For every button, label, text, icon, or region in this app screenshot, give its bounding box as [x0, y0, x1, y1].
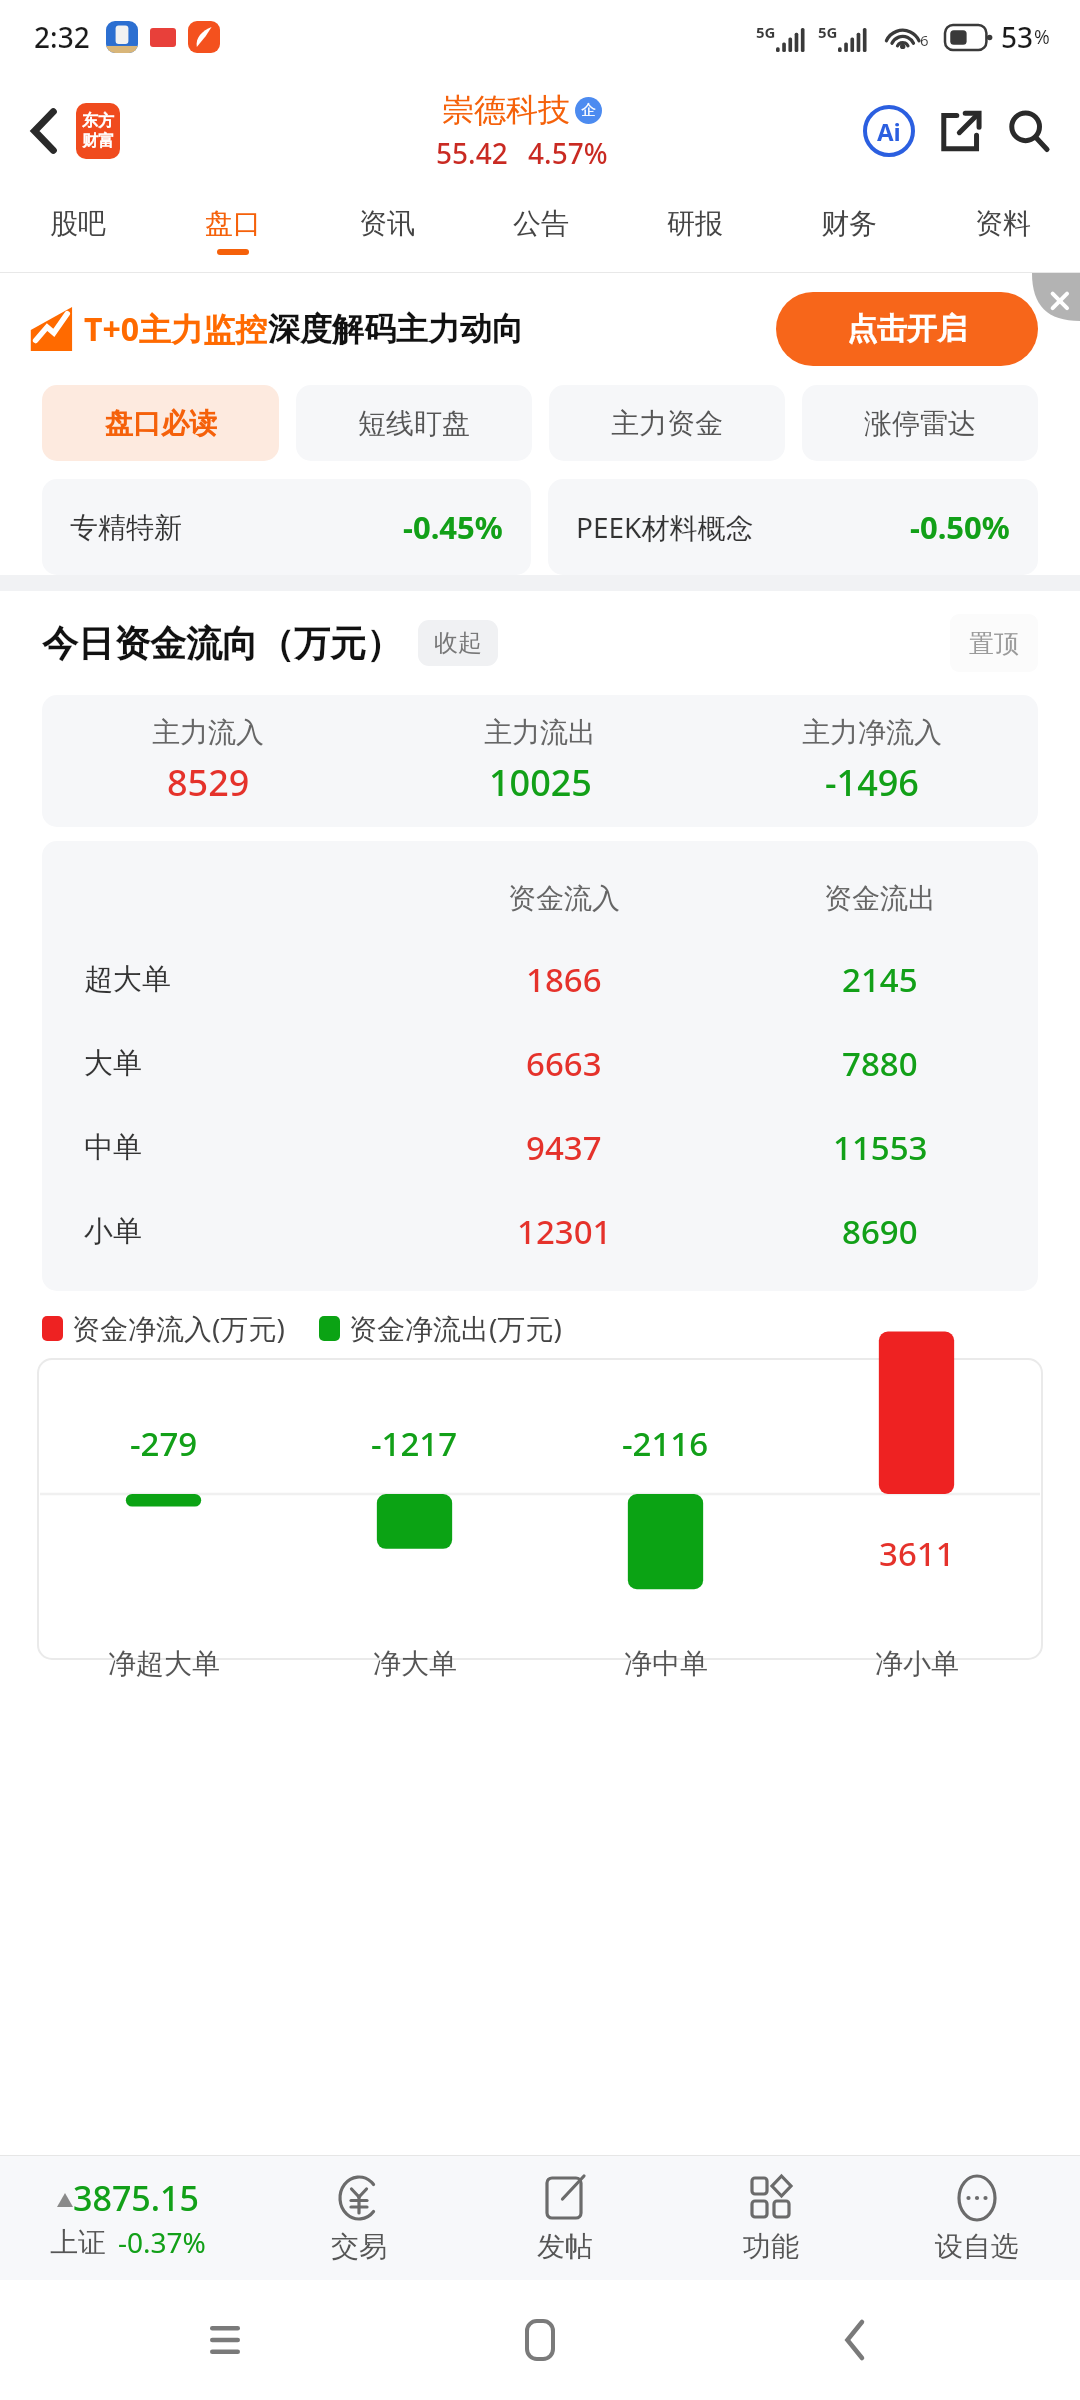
staticText: 企	[581, 101, 596, 120]
button[interactable]: 主力资金	[549, 385, 785, 461]
staticText: 盘口必读	[105, 406, 217, 441]
staticText: 财富	[82, 131, 114, 151]
staticText: 资金净流出(万元)	[349, 1309, 562, 1347]
button[interactable]: 盘口必读	[42, 385, 279, 461]
staticText: 2:32	[34, 18, 90, 56]
staticText: 资金净流入(万元)	[72, 1309, 285, 1347]
staticText: 资金流入	[508, 881, 620, 916]
button[interactable]: 公告	[464, 188, 618, 272]
staticText: 小单	[84, 1213, 142, 1250]
staticText: Ai	[877, 115, 901, 148]
staticText: 6	[920, 30, 929, 50]
button[interactable]: Back	[820, 2305, 890, 2375]
staticText: 交易	[331, 2229, 387, 2264]
button[interactable]: Search	[998, 100, 1060, 162]
staticText: 置顶	[969, 628, 1019, 659]
staticText: 崇德科技	[442, 90, 570, 130]
staticText: -0.45%	[403, 506, 503, 548]
staticText: 10025	[489, 758, 592, 807]
staticText: 专精特新	[70, 510, 182, 545]
staticText: 净小单	[875, 1646, 959, 1681]
button[interactable]: AI assistant	[858, 100, 920, 162]
staticText: 8529	[167, 758, 250, 807]
button[interactable]: Back	[14, 100, 76, 162]
button[interactable]: 短线盯盘	[296, 385, 532, 461]
staticText: 超大单	[84, 961, 171, 998]
staticText: 股吧	[50, 206, 106, 241]
staticText: 1866	[526, 957, 602, 1002]
staticText: 资讯	[359, 206, 415, 241]
staticText: 资料	[975, 206, 1031, 241]
staticText: 短线盯盘	[358, 406, 470, 441]
button[interactable]: 3875.15	[0, 2156, 256, 2280]
button[interactable]: 发帖	[462, 2156, 668, 2280]
button[interactable]: 交易	[256, 2156, 462, 2280]
staticText: -0.50%	[910, 506, 1010, 548]
button[interactable]: 研报	[618, 188, 772, 272]
staticText: %	[1034, 24, 1050, 50]
staticText: 盘口	[205, 206, 261, 241]
staticText: 深度解码主力动向	[268, 309, 524, 349]
staticText: 12301	[517, 1209, 612, 1254]
staticText: 主力净流入	[802, 715, 942, 750]
staticText: 涨停雷达	[864, 406, 976, 441]
button[interactable]: 涨停雷达	[802, 385, 1038, 461]
staticText: 3611	[879, 1531, 955, 1576]
staticText: -0.37%	[118, 2223, 206, 2261]
button[interactable]: 资料	[926, 188, 1080, 272]
staticText: -2116	[622, 1421, 709, 1466]
button[interactable]: Home	[505, 2305, 575, 2375]
button[interactable]: Close ad	[1032, 273, 1080, 321]
button[interactable]: 设自选	[874, 2156, 1080, 2280]
staticText: 中单	[84, 1129, 142, 1166]
staticText: 8690	[842, 1209, 918, 1254]
staticText: 净中单	[624, 1646, 708, 1681]
button[interactable]: 股吧	[0, 188, 155, 272]
button[interactable]: 财务	[772, 188, 926, 272]
button[interactable]: 大单	[42, 1021, 1038, 1105]
button[interactable]: 超大单	[42, 937, 1038, 1021]
staticText: PEEK材料概念	[576, 508, 754, 546]
button[interactable]: Share	[930, 100, 992, 162]
staticText: 53	[1001, 18, 1034, 56]
staticText: 收起	[434, 628, 482, 658]
staticText: 研报	[667, 206, 723, 241]
staticText: 净超大单	[108, 1646, 220, 1681]
button[interactable]: 专精特新	[42, 479, 531, 575]
staticText: 4.57%	[528, 134, 608, 172]
button[interactable]: 盘口	[155, 188, 310, 272]
button[interactable]: 功能	[668, 2156, 874, 2280]
button[interactable]: 小单	[42, 1189, 1038, 1273]
button[interactable]: PEEK材料概念	[548, 479, 1038, 575]
staticText: T+0主力监控	[84, 307, 268, 351]
button[interactable]: Recents	[190, 2305, 260, 2375]
staticText: 净大单	[373, 1646, 457, 1681]
staticText: -1217	[371, 1421, 458, 1466]
staticText: 2145	[842, 957, 918, 1002]
staticText: 7880	[842, 1041, 918, 1086]
staticText: 5G	[818, 22, 838, 42]
staticText: 资金流出	[824, 881, 936, 916]
staticText: 设自选	[935, 2229, 1019, 2264]
staticText: 东方	[82, 111, 114, 131]
button[interactable]: 点击开启	[776, 292, 1038, 366]
staticText: 主力资金	[611, 406, 723, 441]
staticText: 55.42	[436, 134, 508, 172]
staticText: 5G	[756, 22, 776, 42]
staticText: 公告	[513, 206, 569, 241]
staticText: 3875.15	[73, 2175, 199, 2221]
staticText: 大单	[84, 1045, 142, 1082]
button[interactable]: 资讯	[310, 188, 464, 272]
staticText: 上证	[50, 2225, 106, 2260]
button[interactable]: 东方财富	[76, 103, 120, 159]
staticText: 功能	[743, 2229, 799, 2264]
button[interactable]: 收起	[418, 620, 498, 666]
staticText: 点击开启	[847, 310, 967, 348]
staticText: -1496	[825, 758, 919, 807]
staticText: 6663	[526, 1041, 602, 1086]
button[interactable]: 中单	[42, 1105, 1038, 1189]
staticText: 今日资金流向（万元）	[42, 621, 402, 666]
staticText: 11553	[833, 1125, 928, 1170]
button[interactable]: 置顶	[950, 614, 1038, 672]
staticText: 9437	[526, 1125, 602, 1170]
